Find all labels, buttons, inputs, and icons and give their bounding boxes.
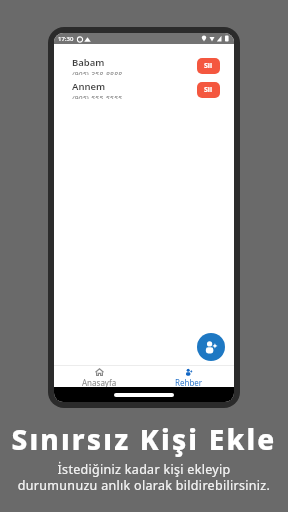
staticText: Anasayfa (82, 377, 117, 387)
staticText: 17:30 (58, 35, 74, 43)
button[interactable]: Sil (197, 82, 220, 98)
button[interactable]: Sil (197, 58, 220, 74)
button[interactable]: Annem (72, 80, 220, 99)
staticText: (905) 555-5555 (72, 93, 122, 99)
button[interactable]: Rehber (144, 366, 234, 387)
button[interactable]: Anasayfa (54, 366, 144, 387)
staticText: Sil (204, 61, 213, 71)
staticText: Annem (72, 80, 106, 93)
staticText: (905) 358-8888 (72, 69, 122, 75)
staticText: Sil (204, 85, 213, 95)
staticText: Sınırsız Kişi Ekle (0, 420, 288, 458)
staticText: Rehber (175, 377, 203, 387)
staticText: Babam (72, 56, 105, 69)
button[interactable] (197, 333, 225, 361)
staticText: İstediğiniz kadar kişi ekleyip durumunuz… (0, 461, 288, 493)
button[interactable]: Babam (72, 56, 220, 75)
